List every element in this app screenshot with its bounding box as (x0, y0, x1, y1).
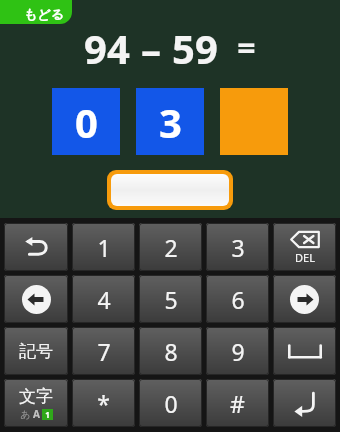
staticText: 1 (45, 409, 50, 420)
button[interactable]: 1 (72, 223, 135, 271)
staticText: 1 (97, 232, 111, 263)
button[interactable]: DEL (273, 223, 336, 271)
button[interactable]: # (206, 379, 269, 427)
staticText: 59 (172, 21, 218, 75)
staticText: * (97, 388, 110, 419)
button[interactable]: 6 (206, 275, 269, 323)
staticText: 9 (231, 336, 245, 367)
button[interactable]: 9 (206, 327, 269, 375)
button[interactable]: * (72, 379, 135, 427)
staticText: A (33, 407, 40, 421)
button[interactable] (111, 174, 229, 206)
staticText: 3 (159, 95, 182, 149)
button[interactable]: Move right (273, 275, 336, 323)
staticText: 記号 (19, 341, 53, 362)
staticText: 5 (164, 284, 178, 315)
button[interactable]: 8 (139, 327, 202, 375)
button[interactable]: Undo (4, 223, 68, 271)
button[interactable]: もどる (0, 0, 72, 24)
staticText: 8 (164, 336, 178, 367)
button[interactable]: 0 (139, 379, 202, 427)
button[interactable]: 3 (206, 223, 269, 271)
staticText: # (230, 388, 245, 419)
button[interactable]: 7 (72, 327, 135, 375)
button[interactable]: 記号 (4, 327, 68, 375)
button[interactable]: 0 (52, 88, 120, 155)
staticText: 文字 (19, 386, 53, 407)
staticText: 6 (231, 284, 245, 315)
staticText: もどる (24, 6, 64, 22)
button[interactable]: 文字 (4, 379, 68, 427)
staticText: DEL (295, 250, 315, 265)
staticText: あ (20, 408, 31, 421)
staticText: 0 (164, 388, 178, 419)
staticText: – (141, 21, 161, 75)
staticText: 94 (84, 21, 130, 75)
button[interactable]: Move left (4, 275, 68, 323)
staticText: 0 (75, 95, 98, 149)
button[interactable]: 5 (139, 275, 202, 323)
button[interactable]: Space (273, 327, 336, 375)
staticText: = (237, 26, 256, 70)
staticText: 7 (97, 336, 111, 367)
staticText: 2 (164, 232, 178, 263)
button[interactable]: Enter (273, 379, 336, 427)
staticText: 3 (231, 232, 245, 263)
button[interactable]: 2 (139, 223, 202, 271)
button[interactable]: 4 (72, 275, 135, 323)
button[interactable]: 3 (136, 88, 204, 155)
staticText: 4 (97, 284, 111, 315)
